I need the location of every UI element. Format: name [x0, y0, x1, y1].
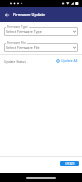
staticText: Firmware Update: [13, 12, 46, 17]
staticText: Firmware Type: [7, 25, 28, 29]
staticText: Select Firmware File: [6, 45, 40, 50]
staticText: Firmware File: [7, 41, 26, 45]
button[interactable]: Back: [2, 10, 11, 19]
staticText: Update Status: [4, 59, 26, 63]
button[interactable]: Select Firmware File: [4, 43, 78, 52]
button[interactable]: Select Firmware Type: [4, 27, 78, 36]
staticText: Select Firmware Type: [6, 29, 42, 34]
staticText: Update All: [61, 58, 78, 63]
staticText: UPDATE: [65, 162, 75, 166]
button[interactable]: Update All: [56, 58, 78, 63]
button[interactable]: UPDATE: [60, 161, 79, 166]
